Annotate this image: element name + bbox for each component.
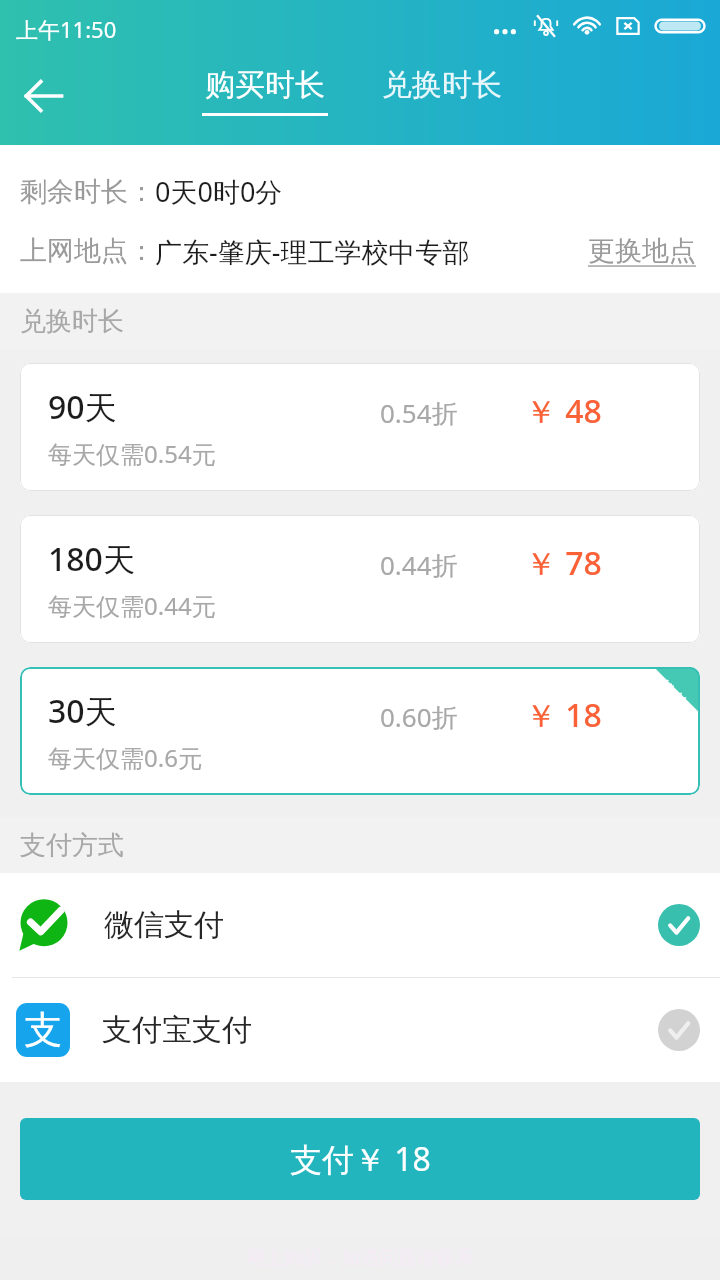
staticText: 兑换时长 xyxy=(382,66,502,104)
button[interactable]: Back xyxy=(10,62,78,130)
staticText: 上网地点： xyxy=(20,234,155,268)
button[interactable]: 兑换时长 xyxy=(376,66,508,104)
staticText: 剩余时长： xyxy=(20,175,155,209)
staticText: 0天0时0分 xyxy=(155,173,283,210)
staticText: 购买时长 xyxy=(205,66,325,104)
button[interactable]: 推荐 xyxy=(20,667,700,795)
button[interactable]: 购买时长 xyxy=(196,66,334,116)
staticText: 90天 xyxy=(48,385,117,429)
staticText: 上午11:50 xyxy=(16,14,117,44)
button[interactable]: 更换地点 xyxy=(584,230,700,272)
button[interactable]: 支付￥ 18 xyxy=(20,1118,700,1200)
staticText: ￥ 48 xyxy=(525,389,602,433)
staticText: 0.54折 xyxy=(380,395,458,431)
staticText: 30天 xyxy=(48,689,117,733)
staticText: 兑换时长 xyxy=(20,305,124,338)
staticText: 更换地点 xyxy=(588,234,696,268)
staticText: 0.44折 xyxy=(380,547,458,583)
button[interactable]: 180天 xyxy=(20,515,700,643)
staticText: 每天仅需0.6元 xyxy=(48,741,202,774)
staticText: 每天仅需0.54元 xyxy=(48,437,216,470)
staticText: 推荐 xyxy=(653,676,691,715)
staticText: ￥ 78 xyxy=(525,541,602,585)
staticText: 180天 xyxy=(48,537,135,581)
staticText: 0.60折 xyxy=(380,699,458,735)
staticText: 支 xyxy=(24,1006,62,1054)
staticText: 支付￥ 18 xyxy=(290,1137,431,1181)
staticText: 每天仅需0.44元 xyxy=(48,589,216,622)
staticText: ￥ 18 xyxy=(525,693,602,737)
button[interactable]: 支 xyxy=(0,978,720,1082)
button[interactable]: 90天 xyxy=(20,363,700,491)
button[interactable]: 微信支付 xyxy=(0,873,720,977)
staticText: 支付宝支付 xyxy=(102,1011,252,1049)
staticText: 广东-肇庆-理工学校中专部 xyxy=(155,233,470,270)
staticText: 微信支付 xyxy=(104,906,224,944)
staticText: 支付方式 xyxy=(20,829,124,862)
